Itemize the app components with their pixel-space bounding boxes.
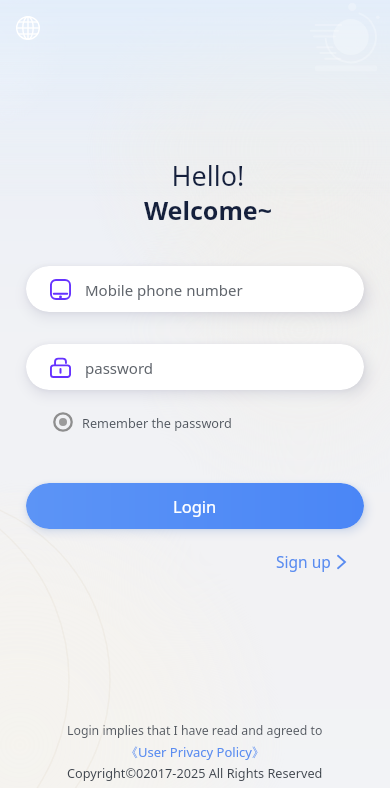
staticText: Mobile phone number: [85, 280, 243, 300]
staticText: Login: [173, 495, 217, 517]
button[interactable]: Mobile phone number: [26, 266, 364, 312]
staticText: Welcome~: [13, 193, 390, 227]
button[interactable]: password: [26, 344, 364, 390]
button[interactable]: Remember the password: [48, 407, 240, 437]
staticText: Remember the password: [82, 414, 232, 431]
staticText: Sign up: [276, 551, 331, 572]
staticText: password: [85, 358, 153, 378]
staticText: Copyright©02017-2025 All Rights Reserved: [67, 764, 323, 781]
button[interactable]: Login: [26, 483, 364, 529]
button[interactable]: Sign up: [271, 547, 352, 576]
button[interactable]: 《User Privacy Policy》: [125, 743, 265, 761]
staticText: Hello!: [13, 157, 390, 194]
button[interactable]: Change language: [10, 10, 45, 45]
staticText: Login implies that I have read and agree…: [67, 722, 323, 739]
